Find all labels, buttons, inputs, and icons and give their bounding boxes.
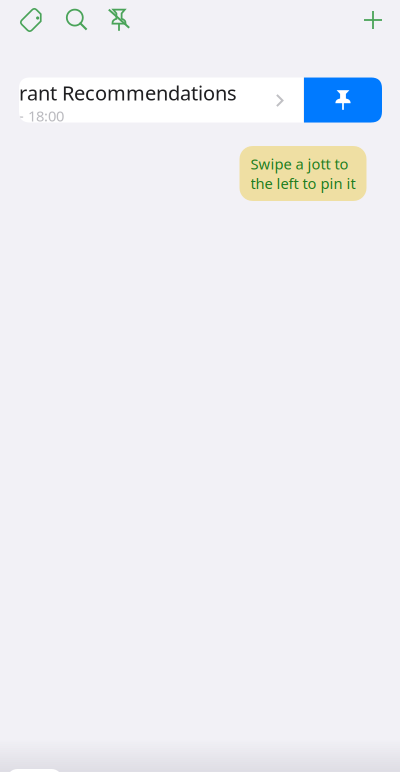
staticText: Restaurant Recommendations	[0, 79, 237, 106]
staticText: Thu 3 Jul - 18:00	[0, 106, 64, 125]
button[interactable]: Restaurant Recommendations	[19, 77, 303, 122]
button[interactable]: New jott	[362, 9, 384, 31]
button[interactable]: Show unpinned	[108, 7, 130, 33]
button[interactable]: Pin	[304, 77, 382, 122]
button[interactable]: Search	[65, 8, 89, 32]
staticText: Swipe a jott to the left to pin it	[250, 154, 355, 193]
button[interactable]: Tags	[18, 6, 46, 34]
